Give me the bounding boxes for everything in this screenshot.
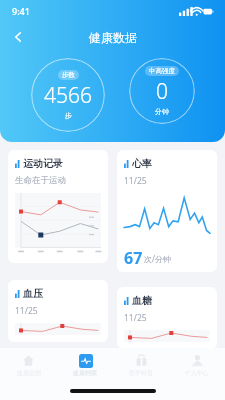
staticText: 健康数据 [89,30,137,45]
staticText: 4566 [44,81,92,110]
staticText: 心率 [132,157,152,170]
staticText: 11/25 [15,305,38,317]
staticText: 个人中心 [185,369,209,377]
button[interactable]: 医学科普 [113,351,169,379]
staticText: 中高强度 [149,67,175,75]
staticText: 医学科普 [129,369,153,377]
staticText: 分钟 [155,107,169,116]
staticText: 步 [65,111,72,120]
staticText: 健康档案 [73,369,97,377]
staticText: 11/25 [124,175,147,187]
staticText: 血糖 [132,294,152,307]
staticText: 运动记录 [23,157,63,170]
staticText: 11/25 [124,312,147,324]
staticText: 血压 [23,287,43,300]
staticText: 步数 [62,71,75,79]
button[interactable]: 中高强度 [129,58,195,124]
button[interactable]: 健康监测 [0,351,57,379]
button[interactable]: 运动记录 [8,150,108,263]
button[interactable]: 血糖 [117,287,217,349]
staticText: 0 [156,77,168,106]
button[interactable]: Back [6,25,30,49]
staticText: 次/分钟 [144,253,171,264]
button[interactable]: 健康档案 [57,351,113,379]
button[interactable]: 个人中心 [169,351,225,379]
staticText: 9:41 [12,5,30,17]
staticText: 67 [124,247,143,265]
staticText: 健康监测 [17,369,41,377]
button[interactable]: 心率 [117,150,217,272]
staticText: 生命在于运动 [15,175,66,186]
button[interactable]: 血压 [8,280,108,342]
button[interactable]: 步数 [31,58,105,132]
